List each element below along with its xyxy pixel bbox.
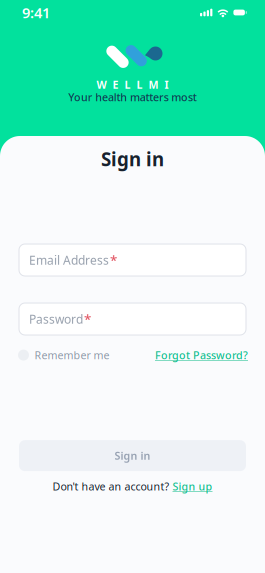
staticText: Email Address (29, 252, 109, 268)
button[interactable]: Remember me (18, 348, 109, 362)
staticText: Sign in (114, 449, 150, 463)
staticText: * (110, 251, 117, 269)
staticText: 9:41 (22, 3, 50, 22)
button[interactable]: Password (19, 303, 246, 335)
staticText: WELLMI (96, 77, 168, 92)
staticText: Don't have an account? (52, 479, 169, 493)
staticText: Sign up (172, 479, 212, 493)
button[interactable]: Forgot Password? (155, 348, 248, 362)
staticText: Your health matters most (68, 90, 197, 104)
staticText: Forgot Password? (155, 348, 248, 362)
staticText: * (84, 310, 91, 328)
staticText: Remember me (34, 348, 109, 362)
staticText: Password (29, 311, 83, 327)
button[interactable]: Sign in (19, 440, 246, 471)
staticText: Sign in (101, 147, 164, 171)
button[interactable]: Sign up (172, 479, 212, 493)
button[interactable]: Email Address (19, 244, 246, 276)
